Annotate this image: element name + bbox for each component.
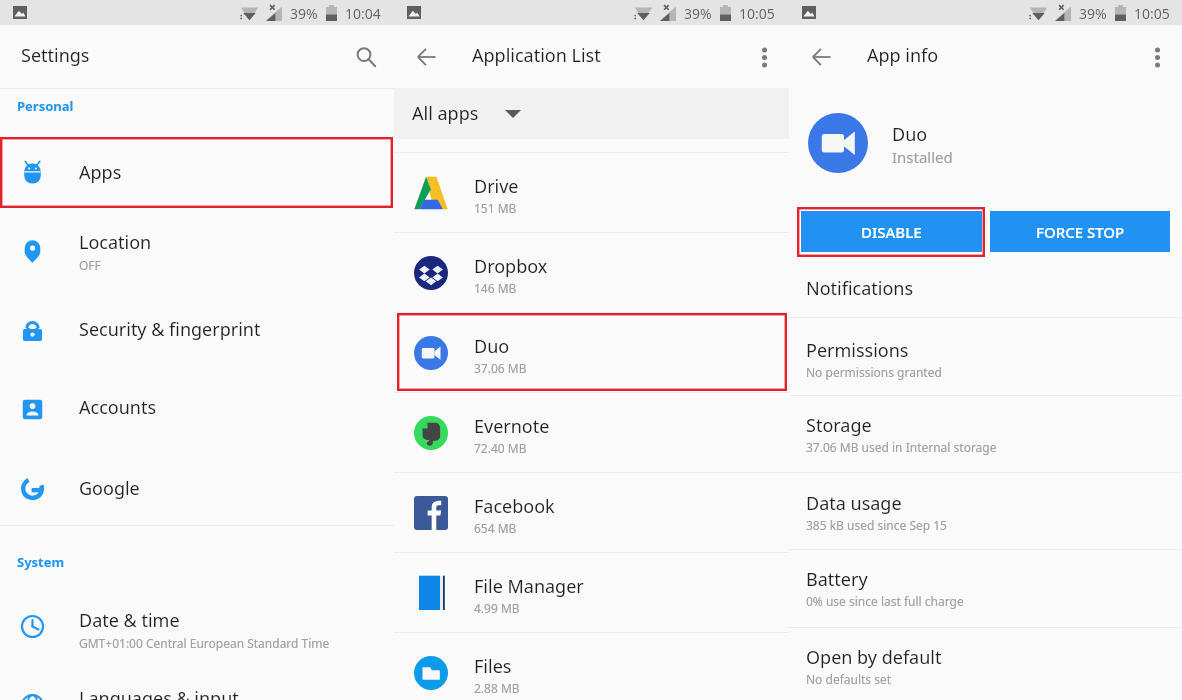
staticText: OFF <box>79 257 101 273</box>
button[interactable]: Back <box>406 37 446 77</box>
staticText: 2.88 MB <box>474 680 520 696</box>
staticText: System <box>17 553 65 571</box>
staticText: Date & time <box>79 608 180 633</box>
button[interactable]: More options <box>1137 37 1177 77</box>
staticText: 4.99 MB <box>474 600 520 616</box>
button[interactable]: Battery <box>806 550 1182 627</box>
staticText: Evernote <box>474 414 550 439</box>
staticText: Personal <box>17 97 74 115</box>
staticText: Application List <box>472 43 601 68</box>
staticText: Settings <box>21 43 90 68</box>
button[interactable]: Permissions <box>806 318 1182 395</box>
staticText: FORCE STOP <box>1036 222 1125 242</box>
button[interactable]: Files <box>394 633 789 700</box>
button[interactable]: Open by default <box>806 628 1182 700</box>
button[interactable]: Accounts <box>0 370 394 449</box>
staticText: 654 MB <box>474 520 517 536</box>
staticText: Dropbox <box>474 254 548 279</box>
button[interactable]: Search <box>346 37 386 77</box>
staticText: Drive <box>474 174 519 199</box>
staticText: Files <box>474 654 512 679</box>
button[interactable]: Notifications <box>806 256 1182 317</box>
button[interactable]: All apps <box>394 88 789 139</box>
staticText: Open by default <box>806 645 942 670</box>
staticText: 39% <box>684 4 712 23</box>
staticText: 39% <box>1079 4 1107 23</box>
staticText: Duo <box>474 334 510 359</box>
staticText: Storage <box>806 413 872 438</box>
staticText: Apps <box>79 160 122 185</box>
staticText: Duo <box>892 122 928 147</box>
staticText: App info <box>867 43 939 68</box>
button[interactable]: More options <box>744 37 784 77</box>
button[interactable]: Date & time <box>0 587 394 666</box>
button[interactable]: Drive <box>394 153 789 232</box>
staticText: Notifications <box>806 276 914 301</box>
staticText: Location <box>79 230 152 255</box>
staticText: Accounts <box>79 395 157 420</box>
staticText: Google <box>79 476 140 501</box>
staticText: 37.06 MB <box>474 360 527 376</box>
staticText: Data usage <box>806 491 902 516</box>
staticText: Facebook <box>474 494 555 519</box>
staticText: 10:04 <box>345 4 381 23</box>
staticText: Security & fingerprint <box>79 317 261 342</box>
staticText: Battery <box>806 567 868 592</box>
staticText: Languages & input <box>79 686 239 700</box>
staticText: DISABLE <box>861 222 922 242</box>
button[interactable]: File Manager <box>394 553 789 632</box>
staticText: All apps <box>412 101 479 126</box>
staticText: No permissions granted <box>806 364 942 380</box>
staticText: 10:05 <box>739 4 775 23</box>
staticText: Permissions <box>806 338 909 363</box>
button[interactable]: Facebook <box>394 473 789 552</box>
staticText: 385 kB used since Sep 15 <box>806 517 947 533</box>
staticText: 37.06 MB used in Internal storage <box>806 439 997 455</box>
staticText: 146 MB <box>474 280 517 296</box>
button[interactable]: Google <box>0 449 394 528</box>
staticText: 72.40 MB <box>474 440 527 456</box>
staticText: 39% <box>290 4 318 23</box>
button[interactable]: Back <box>801 37 841 77</box>
button[interactable]: DISABLE <box>801 211 982 252</box>
staticText: Installed <box>892 147 953 167</box>
staticText: 151 MB <box>474 200 517 216</box>
button[interactable]: Languages & input <box>0 666 394 700</box>
staticText: File Manager <box>474 574 584 599</box>
staticText: 0% use since last full charge <box>806 593 964 609</box>
staticText: No defaults set <box>806 671 892 687</box>
button[interactable]: Apps <box>0 133 394 212</box>
button[interactable]: Location <box>0 212 394 291</box>
button[interactable]: Storage <box>806 396 1182 472</box>
button[interactable]: Dropbox <box>394 233 789 312</box>
button[interactable]: Duo <box>394 313 789 392</box>
staticText: 10:05 <box>1134 4 1170 23</box>
button[interactable]: Evernote <box>394 393 789 472</box>
button[interactable]: Security & fingerprint <box>0 291 394 370</box>
button[interactable]: FORCE STOP <box>990 211 1170 252</box>
button[interactable]: Data usage <box>806 473 1182 549</box>
staticText: GMT+01:00 Central European Standard Time <box>79 635 330 651</box>
